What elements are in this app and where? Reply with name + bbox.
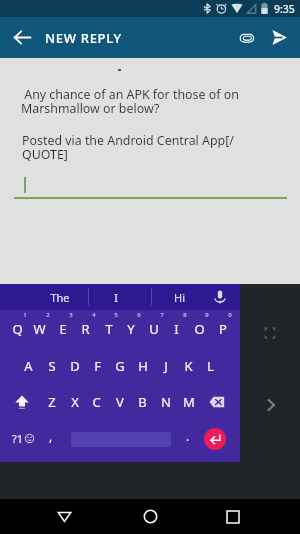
button[interactable]: . [177, 420, 199, 456]
button[interactable]: N [154, 384, 177, 420]
staticText: 4 [90, 311, 98, 319]
button[interactable]: C [85, 384, 108, 420]
staticText: Q [12, 320, 23, 338]
button[interactable]: Y [119, 311, 142, 347]
button[interactable]: T [97, 311, 120, 347]
button[interactable]: X [63, 384, 86, 420]
staticText: F [94, 357, 101, 375]
staticText: M [183, 393, 195, 411]
staticText: NEW REPLY [45, 29, 122, 47]
staticText: 1 [21, 311, 29, 319]
button[interactable]: V [108, 384, 131, 420]
staticText: J [164, 357, 168, 375]
button[interactable]: Voice input [208, 284, 232, 310]
button[interactable]: U [142, 311, 165, 347]
staticText: . [186, 428, 190, 444]
button[interactable]: E [51, 311, 74, 347]
staticText: B [138, 393, 147, 411]
button[interactable]: K [177, 348, 200, 384]
button[interactable]: Symbols [2, 420, 44, 456]
staticText: The [50, 290, 70, 305]
button[interactable]: Backspace [198, 384, 236, 420]
button[interactable]: D [63, 348, 86, 384]
button[interactable]: M [177, 384, 200, 420]
button[interactable]: A [17, 348, 40, 384]
staticText: Posted via the Android Central App[/ QUO… [22, 132, 298, 163]
button[interactable]: W [28, 311, 51, 347]
button[interactable]: Recents [215, 499, 251, 534]
staticText: A [24, 357, 33, 375]
button[interactable]: Resize keyboard [258, 321, 282, 345]
staticText: 9:35 [274, 2, 295, 16]
staticText: Hi [174, 290, 185, 305]
button[interactable]: , [40, 420, 62, 456]
staticText: N [161, 393, 171, 411]
staticText: E [59, 320, 67, 338]
button[interactable]: S [40, 348, 63, 384]
staticText: 3 [67, 311, 75, 319]
staticText: , [49, 428, 53, 444]
staticText: R [81, 320, 90, 338]
button[interactable]: Z [40, 384, 63, 420]
button[interactable]: F [86, 348, 109, 384]
staticText: I [114, 290, 118, 305]
button[interactable]: Shift [2, 384, 42, 420]
staticText: W [33, 320, 46, 338]
button[interactable]: L [199, 348, 222, 384]
staticText: V [116, 393, 124, 411]
button[interactable]: I [165, 311, 188, 347]
button[interactable]: Hi [152, 284, 206, 310]
button[interactable]: Attach file [232, 17, 262, 58]
button[interactable]: J [154, 348, 177, 384]
staticText: 5 [112, 311, 120, 319]
staticText: X [71, 393, 79, 411]
button[interactable]: Send [264, 17, 294, 58]
button[interactable]: The [31, 284, 88, 310]
staticText: K [184, 357, 193, 375]
staticText: 0 [226, 311, 234, 319]
staticText: P [219, 320, 227, 338]
staticText: G [115, 357, 125, 375]
staticText: 7 [158, 311, 166, 319]
staticText: O [194, 320, 205, 338]
button[interactable]: Home [132, 499, 168, 534]
staticText: H [138, 357, 148, 375]
staticText: ?1 [12, 431, 24, 446]
staticText: 8 [181, 311, 189, 319]
button[interactable]: P [211, 311, 234, 347]
button[interactable]: Move keyboard [260, 394, 282, 416]
button[interactable]: I [88, 284, 143, 310]
staticText: Y [127, 320, 135, 338]
staticText: Any chance of an APK for those of on Mar… [21, 86, 297, 117]
button[interactable]: R [74, 311, 97, 347]
button[interactable]: Back [0, 17, 44, 58]
staticText: 9 [203, 311, 211, 319]
button[interactable]: Q [6, 311, 29, 347]
staticText: L [207, 357, 214, 375]
button[interactable]: O [188, 311, 211, 347]
staticText: D [70, 357, 80, 375]
staticText: I [174, 320, 179, 338]
staticText: C [92, 393, 101, 411]
button[interactable]: H [131, 348, 154, 384]
staticText: 6 [135, 311, 143, 319]
staticText: 2 [44, 311, 52, 319]
staticText: Z [48, 393, 56, 411]
staticText: U [149, 320, 159, 338]
staticText: S [48, 357, 56, 375]
button[interactable]: G [108, 348, 131, 384]
button[interactable]: Back [46, 499, 82, 534]
button[interactable]: B [131, 384, 154, 420]
button[interactable]: Enter [204, 428, 226, 450]
staticText: T [105, 320, 113, 338]
